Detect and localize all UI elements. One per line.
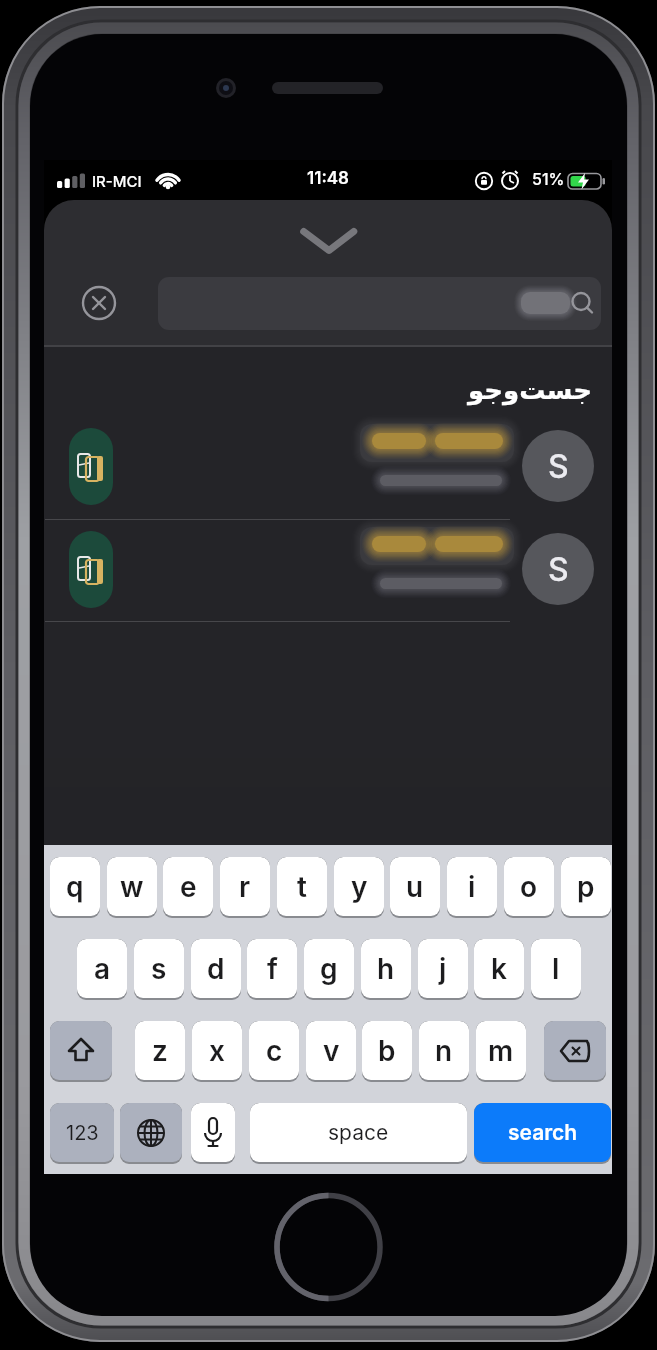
staticText: g bbox=[320, 952, 338, 986]
button[interactable]: v bbox=[306, 1021, 356, 1082]
button[interactable]: z bbox=[135, 1021, 185, 1082]
staticText: 51% bbox=[532, 169, 565, 188]
staticText: e bbox=[180, 870, 197, 904]
button[interactable]: space bbox=[250, 1103, 467, 1164]
button[interactable]: i bbox=[447, 857, 497, 918]
staticText: search bbox=[508, 1120, 578, 1145]
button[interactable] bbox=[158, 277, 601, 330]
button[interactable] bbox=[294, 220, 364, 262]
button[interactable]: S bbox=[44, 420, 612, 515]
button[interactable]: l bbox=[531, 939, 581, 1000]
button[interactable]: m bbox=[476, 1021, 526, 1082]
staticText: b bbox=[378, 1034, 396, 1068]
staticText: m bbox=[488, 1034, 514, 1068]
staticText: x bbox=[209, 1034, 225, 1068]
staticText: z bbox=[152, 1034, 168, 1068]
staticText: جست‌وجو bbox=[468, 375, 592, 405]
button[interactable]: p bbox=[561, 857, 611, 918]
button[interactable]: x bbox=[192, 1021, 242, 1082]
staticText: y bbox=[351, 870, 368, 904]
staticText: r bbox=[239, 870, 251, 904]
staticText: a bbox=[94, 952, 111, 986]
button[interactable]: 123 bbox=[50, 1103, 114, 1164]
staticText: S bbox=[548, 447, 569, 486]
button[interactable]: b bbox=[362, 1021, 412, 1082]
staticText: space bbox=[328, 1120, 389, 1145]
button[interactable]: r bbox=[220, 857, 270, 918]
button[interactable]: a bbox=[77, 939, 127, 1000]
staticText: j bbox=[439, 952, 447, 986]
button[interactable] bbox=[120, 1103, 182, 1164]
button[interactable]: t bbox=[277, 857, 327, 918]
button[interactable]: h bbox=[361, 939, 411, 1000]
button[interactable]: k bbox=[474, 939, 524, 1000]
staticText: IR-MCI bbox=[92, 172, 142, 190]
button[interactable]: s bbox=[134, 939, 184, 1000]
button[interactable]: e bbox=[163, 857, 213, 918]
staticText: f bbox=[267, 952, 278, 986]
button[interactable]: d bbox=[191, 939, 241, 1000]
staticText: v bbox=[323, 1034, 340, 1068]
staticText: k bbox=[491, 952, 507, 986]
staticText: w bbox=[120, 870, 144, 904]
button[interactable] bbox=[191, 1103, 235, 1164]
button[interactable]: search bbox=[474, 1103, 611, 1164]
button[interactable]: g bbox=[304, 939, 354, 1000]
button[interactable]: S bbox=[44, 523, 612, 618]
button[interactable] bbox=[50, 1021, 112, 1082]
staticText: t bbox=[297, 870, 307, 904]
staticText: u bbox=[406, 870, 424, 904]
staticText: o bbox=[520, 870, 538, 904]
button[interactable]: u bbox=[390, 857, 440, 918]
staticText: S bbox=[548, 550, 569, 589]
staticText: h bbox=[377, 952, 395, 986]
staticText: 123 bbox=[66, 1121, 99, 1145]
button[interactable]: f bbox=[247, 939, 297, 1000]
button[interactable] bbox=[80, 284, 118, 322]
staticText: n bbox=[435, 1034, 453, 1068]
button[interactable]: c bbox=[249, 1021, 299, 1082]
button[interactable]: w bbox=[107, 857, 157, 918]
staticText: 11:48 bbox=[307, 168, 350, 189]
button[interactable]: q bbox=[50, 857, 100, 918]
button[interactable]: j bbox=[418, 939, 468, 1000]
staticText: c bbox=[266, 1034, 283, 1068]
staticText: d bbox=[207, 952, 225, 986]
staticText: l bbox=[552, 952, 560, 986]
staticText: i bbox=[468, 870, 476, 904]
button[interactable] bbox=[544, 1021, 606, 1082]
staticText: s bbox=[151, 952, 167, 986]
staticText: p bbox=[577, 870, 595, 904]
button[interactable]: n bbox=[419, 1021, 469, 1082]
button[interactable]: y bbox=[334, 857, 384, 918]
staticText: q bbox=[66, 870, 84, 904]
button[interactable]: o bbox=[504, 857, 554, 918]
